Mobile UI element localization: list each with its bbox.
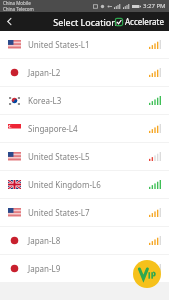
- button[interactable]: United States-L5: [0, 143, 169, 170]
- staticText: Japan-L9: [28, 263, 149, 274]
- staticText: Korea-L3: [28, 95, 149, 106]
- staticText: United States-L7: [28, 207, 149, 218]
- staticText: Accelerate: [125, 16, 164, 27]
- button[interactable]: Accelerate: [114, 14, 165, 29]
- staticText: China Mobile: [3, 0, 31, 6]
- button[interactable]: VIP: [133, 260, 161, 288]
- button[interactable]: United States-L7: [0, 199, 169, 226]
- staticText: United States-L5: [28, 151, 149, 162]
- staticText: Singapore-L4: [28, 123, 149, 134]
- button[interactable]: United Kingdom-L6: [0, 171, 169, 198]
- button[interactable]: Japan-L2: [0, 59, 169, 86]
- button[interactable]: Korea-L3: [0, 87, 169, 114]
- staticText: Japan-L8: [28, 235, 149, 246]
- button[interactable]: United States-L1: [0, 31, 169, 58]
- button[interactable]: Singapore-L4: [0, 115, 169, 142]
- staticText: United Kingdom-L6: [28, 179, 149, 190]
- button[interactable]: Back: [0, 12, 19, 31]
- staticText: 3:27 PM: [143, 2, 166, 10]
- staticText: Select Location: [53, 16, 117, 28]
- button[interactable]: Japan-L8: [0, 227, 169, 254]
- staticText: China Telecom: [3, 6, 34, 12]
- staticText: Japan-L2: [28, 67, 149, 78]
- button[interactable]: Japan-L9: [0, 255, 169, 282]
- staticText: United States-L1: [28, 39, 149, 50]
